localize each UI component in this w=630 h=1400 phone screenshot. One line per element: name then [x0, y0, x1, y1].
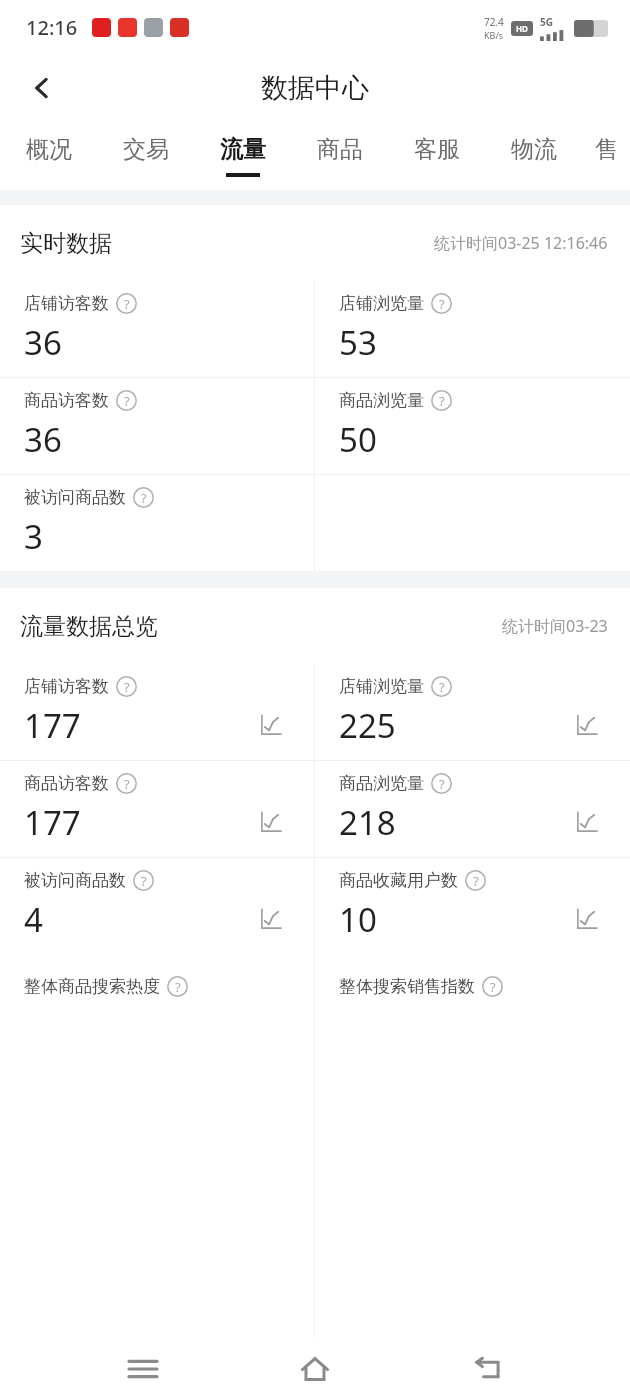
staticText: 概况 — [26, 135, 72, 164]
staticText: ? — [124, 678, 130, 696]
staticText: 流量 — [220, 135, 266, 164]
staticText: 整体商品搜索热度 — [24, 976, 160, 997]
staticText: 商品浏览量 — [339, 390, 424, 411]
button[interactable]: 商品浏览量 — [315, 761, 630, 857]
button[interactable]: 概况 — [0, 121, 97, 190]
staticText: 36 — [24, 320, 62, 365]
button[interactable]: 被访问商品数 — [0, 858, 314, 954]
button[interactable]: Back — [458, 1339, 518, 1399]
button[interactable]: 商品访客数 — [0, 761, 314, 857]
other: Trend chart — [258, 712, 284, 738]
staticText: 商品浏览量 — [339, 773, 424, 794]
button[interactable]: 店铺访客数 — [0, 281, 314, 377]
staticText: ? — [439, 678, 445, 696]
staticText: 10 — [339, 897, 377, 942]
button[interactable]: 店铺浏览量 — [315, 281, 630, 377]
staticText: 店铺浏览量 — [339, 293, 424, 314]
staticText: ? — [439, 295, 445, 313]
staticText: 统计时间03-23 — [502, 615, 608, 637]
staticText: 物流 — [511, 135, 557, 164]
staticText: 被访问商品数 — [24, 487, 126, 508]
staticText: 5G — [540, 15, 553, 29]
staticText: 12:16 — [26, 14, 78, 41]
button[interactable]: 店铺浏览量 — [315, 664, 630, 760]
button[interactable]: 交易 — [97, 121, 194, 190]
button[interactable]: 商品 — [291, 121, 388, 190]
staticText: 商品访客数 — [24, 773, 109, 794]
staticText: 218 — [339, 800, 396, 845]
other: Trend chart — [574, 906, 600, 932]
staticText: 客服 — [414, 135, 460, 164]
button[interactable]: 被访问商品数 — [0, 475, 314, 571]
staticText: 商品收藏用户数 — [339, 870, 458, 891]
staticText: ? — [439, 392, 445, 410]
button[interactable]: 商品浏览量 — [315, 378, 630, 474]
staticText: ? — [175, 978, 181, 996]
other: Trend chart — [574, 712, 600, 738]
button[interactable]: Home — [285, 1339, 345, 1399]
staticText: ? — [439, 775, 445, 793]
button[interactable]: Back — [18, 64, 66, 112]
staticText: ? — [490, 978, 496, 996]
staticText: 72.4 — [484, 15, 504, 29]
staticText: ? — [473, 872, 479, 890]
staticText: 177 — [24, 703, 81, 748]
staticText: 53 — [339, 320, 377, 365]
staticText: 店铺访客数 — [24, 676, 109, 697]
button[interactable]: 商品访客数 — [0, 378, 314, 474]
staticText: 4 — [24, 897, 43, 942]
staticText: ? — [141, 489, 147, 507]
staticText: 商品访客数 — [24, 390, 109, 411]
staticText: 实时数据 — [20, 229, 112, 258]
staticText: 售 — [595, 135, 618, 164]
staticText: 36 — [24, 417, 62, 462]
staticText: HD — [516, 23, 528, 34]
staticText: 统计时间03-25 12:16:46 — [434, 232, 608, 254]
staticText: 店铺浏览量 — [339, 676, 424, 697]
staticText: 整体搜索销售指数 — [339, 976, 475, 997]
button[interactable]: Recents — [113, 1339, 173, 1399]
button[interactable]: 商品收藏用户数 — [315, 858, 630, 954]
staticText: ? — [124, 295, 130, 313]
button[interactable]: 流量 — [194, 121, 291, 190]
other: Trend chart — [258, 906, 284, 932]
staticText: 50 — [339, 417, 377, 462]
staticText: ? — [141, 872, 147, 890]
staticText: 225 — [339, 703, 396, 748]
other: Trend chart — [258, 809, 284, 835]
staticText: 店铺访客数 — [24, 293, 109, 314]
staticText: 数据中心 — [261, 71, 369, 105]
staticText: 商品 — [317, 135, 363, 164]
button[interactable]: 售 — [582, 121, 630, 190]
staticText: ? — [124, 775, 130, 793]
staticText: 交易 — [123, 135, 169, 164]
staticText: 被访问商品数 — [24, 870, 126, 891]
other: Trend chart — [574, 809, 600, 835]
button[interactable]: 客服 — [388, 121, 485, 190]
staticText: ? — [124, 392, 130, 410]
button[interactable]: 物流 — [485, 121, 582, 190]
staticText: KB/s — [484, 29, 504, 41]
staticText: 流量数据总览 — [20, 612, 158, 641]
button[interactable]: 店铺访客数 — [0, 664, 314, 760]
staticText: 3 — [24, 514, 43, 559]
staticText: 177 — [24, 800, 81, 845]
